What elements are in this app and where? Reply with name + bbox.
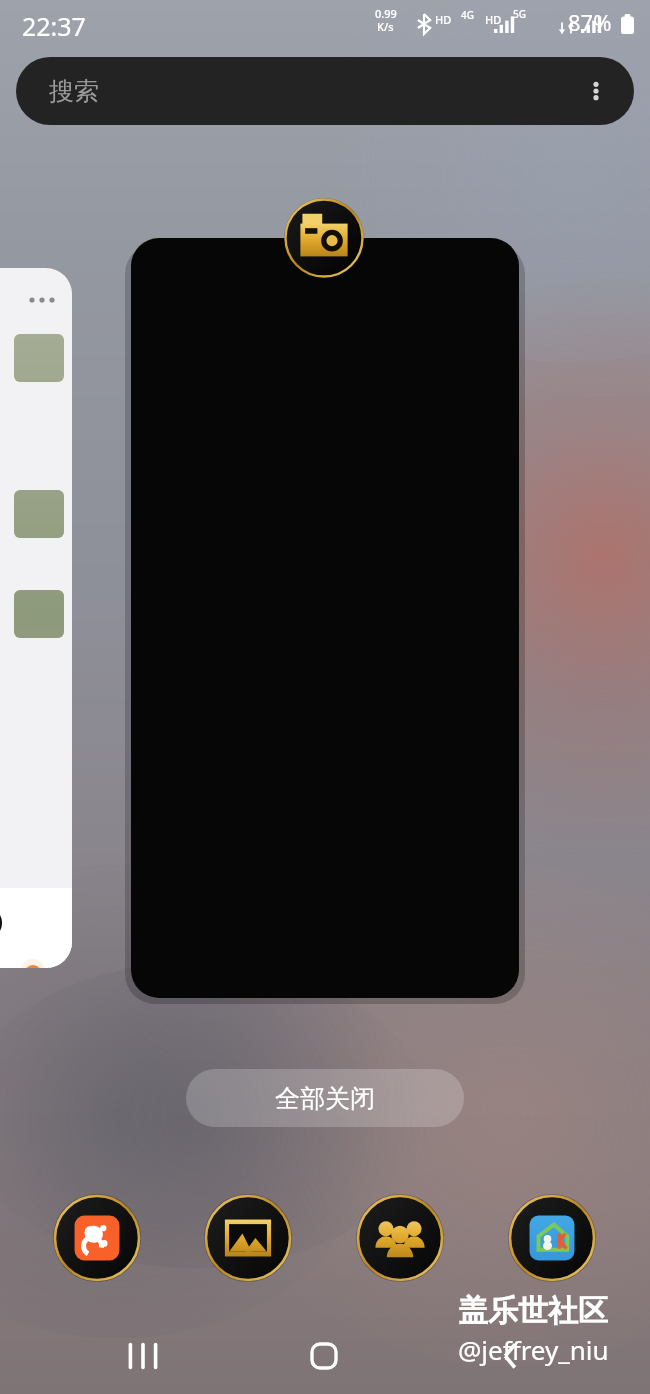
staticText: 4G bbox=[461, 8, 474, 22]
staticText: 87% bbox=[568, 7, 612, 37]
button[interactable]: Camera bbox=[284, 198, 364, 278]
staticText: 全部关闭 bbox=[275, 1083, 375, 1114]
staticText: HD bbox=[435, 12, 452, 27]
button[interactable]: 重输 bbox=[0, 268, 72, 968]
button[interactable]: UC Browser bbox=[53, 1194, 141, 1282]
button[interactable] bbox=[131, 238, 519, 998]
staticText: @jeffrey_niu bbox=[458, 1332, 609, 1367]
staticText: 搜索 bbox=[49, 76, 99, 107]
staticText: 5G bbox=[513, 7, 526, 21]
button[interactable]: Contacts bbox=[356, 1194, 444, 1282]
button[interactable]: Home bbox=[291, 1326, 357, 1386]
button[interactable]: 搜索 bbox=[16, 57, 634, 125]
staticText: 盖乐世社区 bbox=[458, 1292, 608, 1330]
button[interactable]: More options bbox=[574, 69, 618, 113]
button[interactable]: Back bbox=[478, 1326, 544, 1386]
staticText: HD bbox=[485, 12, 502, 27]
staticText: K/s bbox=[377, 19, 394, 34]
button[interactable]: Recents bbox=[105, 1326, 181, 1386]
button[interactable]: Gallery bbox=[204, 1194, 292, 1282]
button[interactable]: Smart Home bbox=[508, 1194, 596, 1282]
staticText: 22:37 bbox=[22, 9, 86, 43]
staticText: 0.99 bbox=[375, 6, 397, 21]
button[interactable]: 全部关闭 bbox=[186, 1069, 464, 1127]
